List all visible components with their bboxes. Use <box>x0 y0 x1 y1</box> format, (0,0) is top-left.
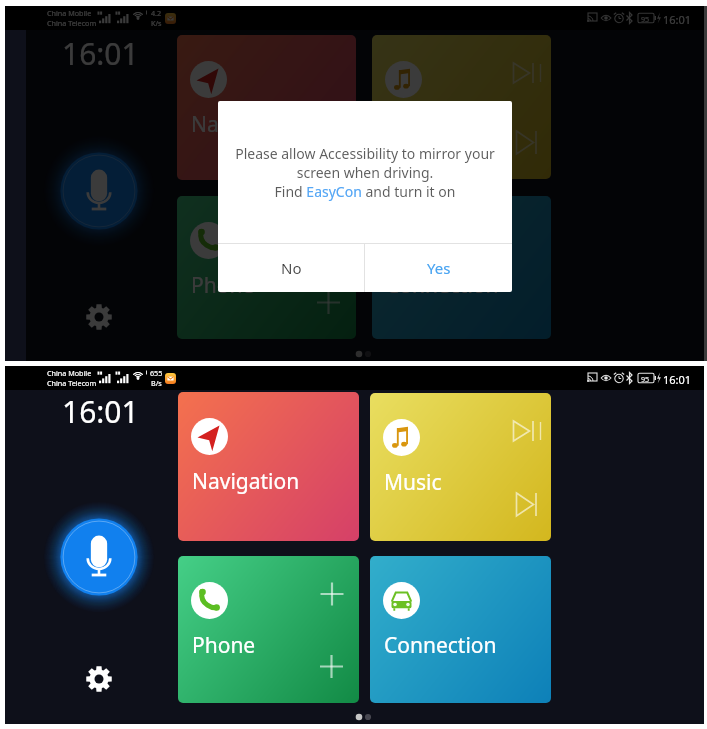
button[interactable]: Phone <box>177 196 356 339</box>
button[interactable]: No <box>218 244 364 292</box>
staticText: 16:01 <box>62 391 139 432</box>
staticText: 95 <box>641 14 650 24</box>
staticText: Connection <box>386 271 499 300</box>
button[interactable]: Music <box>370 393 551 541</box>
staticText: 4.2 <box>151 8 162 18</box>
staticText: Connection <box>384 631 497 660</box>
staticText: China Telecom <box>47 378 97 388</box>
staticText: B/s <box>151 378 162 388</box>
button[interactable]: Music <box>372 35 551 179</box>
staticText: Phone <box>192 631 256 660</box>
staticText: Please allow Accessibility to mirror you… <box>235 144 495 201</box>
button[interactable]: Voice assistant <box>39 497 159 617</box>
staticText: Navigation <box>191 110 299 139</box>
staticText: No <box>281 258 302 278</box>
button[interactable]: Voice assistant <box>39 131 159 251</box>
button[interactable]: Phone <box>178 556 359 703</box>
button[interactable]: Navigation <box>178 392 359 541</box>
staticText: China Mobile <box>47 368 92 378</box>
staticText: Phone <box>191 271 255 300</box>
staticText: China Mobile <box>47 8 92 18</box>
staticText: 655 <box>150 368 163 378</box>
staticText: China Telecom <box>47 18 97 28</box>
staticText: K/s <box>151 18 162 28</box>
staticText: Yes <box>427 258 451 278</box>
staticText: Navigation <box>192 467 300 496</box>
staticText: 95 <box>641 374 650 384</box>
button[interactable]: Settings <box>86 666 112 692</box>
button[interactable]: Navigation <box>177 35 356 180</box>
staticText: 16:01 <box>663 12 692 27</box>
button[interactable]: Connection <box>372 196 551 339</box>
staticText: 16:01 <box>62 33 139 74</box>
staticText: 16:01 <box>663 372 692 387</box>
button[interactable]: Connection <box>370 556 551 703</box>
button[interactable]: Settings <box>86 304 112 330</box>
button[interactable]: Yes <box>365 244 512 292</box>
staticText: Music <box>384 468 442 497</box>
